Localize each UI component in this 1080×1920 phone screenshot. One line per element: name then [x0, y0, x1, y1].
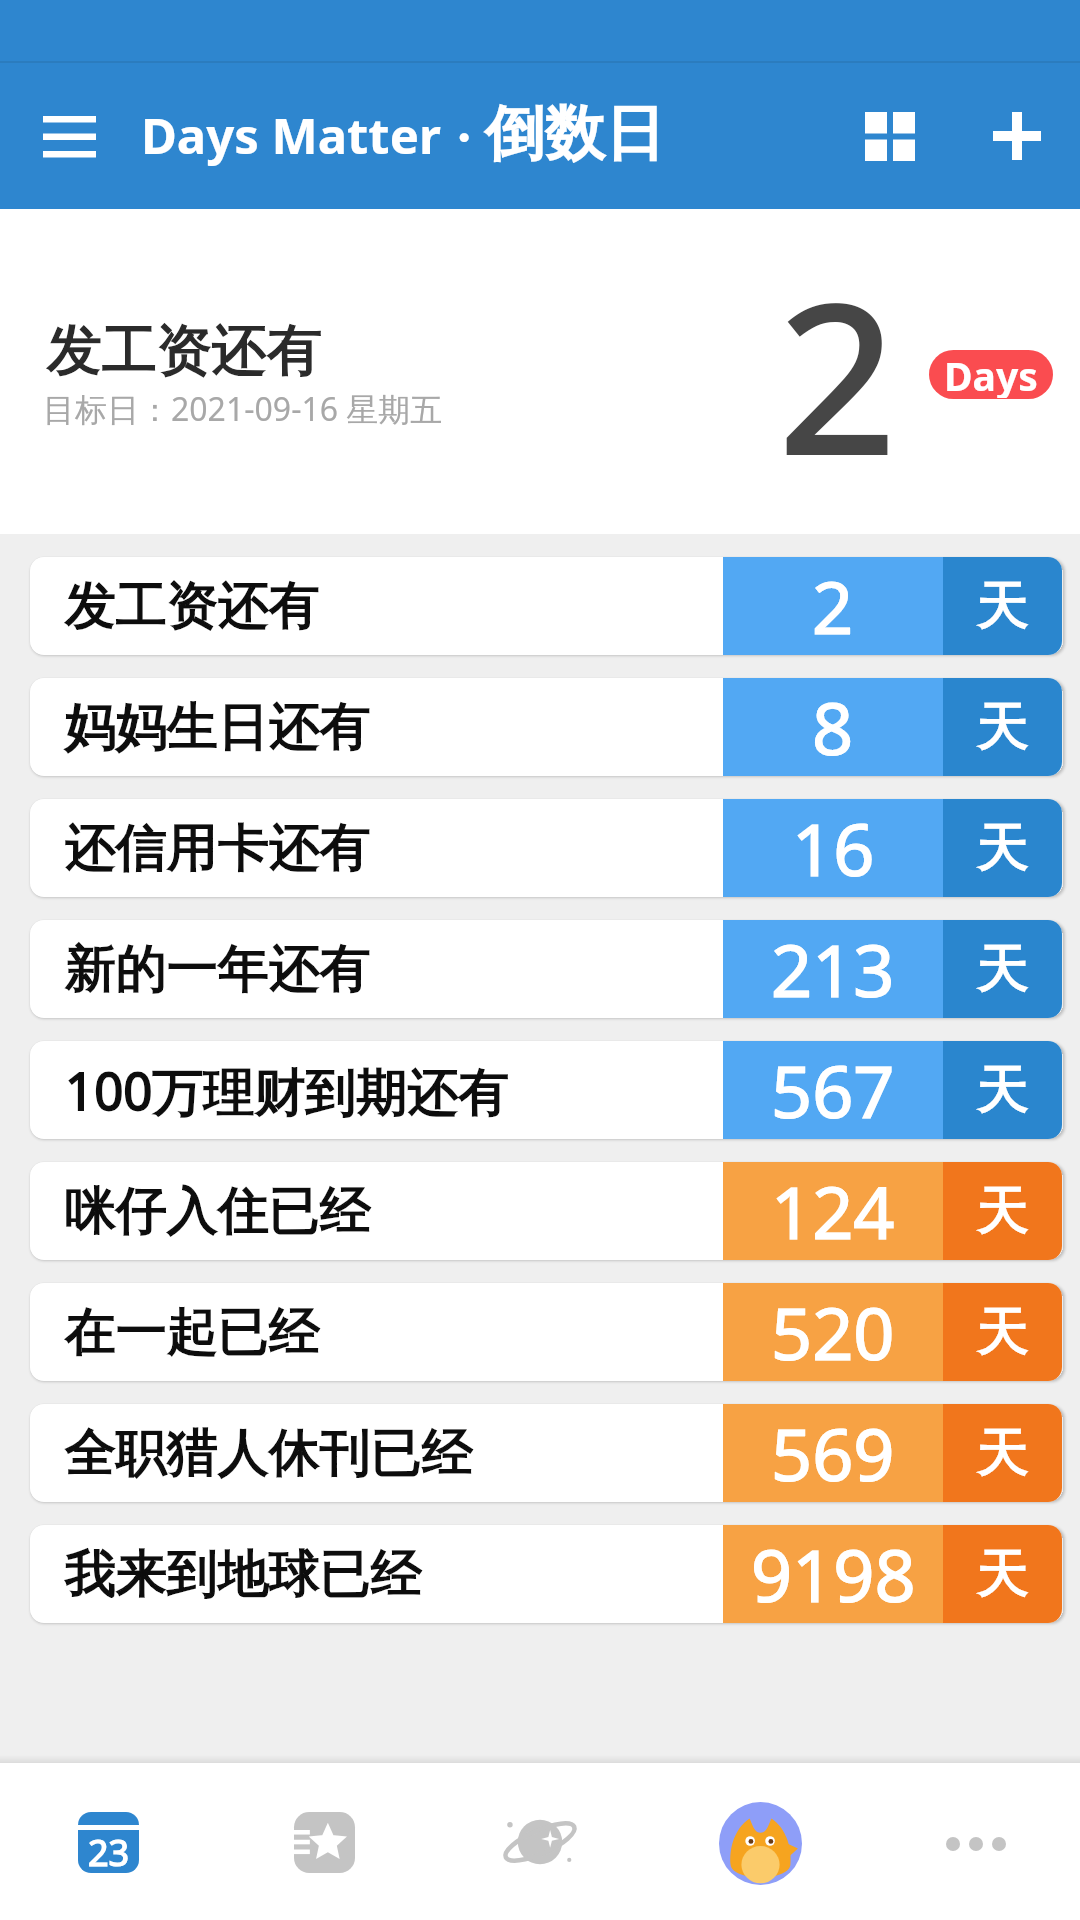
button[interactable]: 咪仔入住已经	[30, 1162, 1062, 1260]
button[interactable]: 全职猎人休刊已经	[30, 1404, 1062, 1502]
staticText: 100万理财到期还有	[65, 1055, 510, 1125]
staticText: 520	[771, 1283, 895, 1381]
staticText: 213	[771, 920, 895, 1018]
staticText: 天	[977, 815, 1029, 881]
staticText: 天	[977, 573, 1029, 639]
staticText: 2	[812, 557, 854, 655]
staticText: 天	[977, 1299, 1029, 1365]
staticText: 在一起已经	[65, 1300, 320, 1364]
button[interactable]: 在一起已经	[30, 1283, 1062, 1381]
button[interactable]: Discover	[432, 1763, 648, 1920]
staticText: 还信用卡还有	[65, 816, 371, 880]
button[interactable]: 新的一年还有	[30, 920, 1062, 1018]
button[interactable]: 妈妈生日还有	[30, 678, 1062, 776]
button[interactable]: 我来到地球已经	[30, 1525, 1062, 1623]
button[interactable]: Switch to grid view	[840, 86, 940, 186]
staticText: 8	[812, 678, 854, 776]
staticText: 全职猎人休刊已经	[65, 1421, 473, 1485]
staticText: 发工资还有	[47, 316, 322, 385]
staticText: 天	[977, 573, 1029, 639]
button[interactable]: Add countdown	[967, 86, 1067, 186]
staticText: Days Matter・倒数日	[141, 96, 665, 172]
staticText: 567	[771, 1041, 895, 1139]
button[interactable]: Countdown list	[0, 1763, 216, 1920]
staticText: 妈妈生日还有	[65, 695, 371, 759]
staticText: 天	[977, 1057, 1029, 1123]
staticText: 213	[771, 920, 895, 1018]
staticText: 新的一年还有	[65, 937, 371, 1001]
staticText: 520	[771, 1283, 895, 1381]
staticText: 9198	[751, 1525, 916, 1623]
staticText: 我来到地球已经	[65, 1542, 422, 1606]
button[interactable]: Open navigation menu	[19, 86, 119, 186]
staticText: 124	[771, 1162, 895, 1260]
button[interactable]: 还信用卡还有	[30, 799, 1062, 897]
staticText: 100万理财到期还有	[65, 1055, 510, 1125]
staticText: 567	[771, 1041, 895, 1139]
staticText: 天	[977, 815, 1029, 881]
button[interactable]: Notes and favourites	[216, 1763, 432, 1920]
staticText: 咪仔入住已经	[65, 1179, 371, 1243]
staticText: 天	[977, 1420, 1029, 1486]
staticText: 23	[88, 1828, 130, 1871]
staticText: 天	[977, 1178, 1029, 1244]
staticText: 咪仔入住已经	[65, 1179, 371, 1243]
staticText: 569	[771, 1404, 895, 1502]
button[interactable]: Profile	[648, 1763, 864, 1920]
button[interactable]: 发工资还有	[30, 557, 1062, 655]
staticText: 发工资还有	[65, 574, 320, 638]
staticText: 天	[977, 1299, 1029, 1365]
staticText: 在一起已经	[65, 1300, 320, 1364]
staticText: 天	[977, 1178, 1029, 1244]
staticText: 发工资还有	[47, 316, 322, 385]
button[interactable]: 发工资还有	[0, 209, 1080, 534]
staticText: 还信用卡还有	[65, 816, 371, 880]
staticText: 天	[977, 936, 1029, 1002]
staticText: 天	[977, 1057, 1029, 1123]
staticText: 124	[771, 1162, 895, 1260]
staticText: 16	[792, 799, 875, 897]
button[interactable]: Days	[929, 350, 1053, 399]
staticText: 16	[792, 799, 875, 897]
staticText: Days	[944, 350, 1038, 398]
staticText: 天	[977, 1541, 1029, 1607]
staticText: 9198	[751, 1525, 916, 1623]
staticText: 569	[771, 1404, 895, 1502]
staticText: 天	[977, 694, 1029, 760]
staticText: 8	[812, 678, 854, 776]
button[interactable]: More options	[864, 1763, 1080, 1920]
staticText: 天	[977, 1420, 1029, 1486]
staticText: 目标日：2021-09-16 星期五	[43, 387, 443, 431]
staticText: 23	[88, 1828, 130, 1871]
button[interactable]: 100万理财到期还有	[30, 1041, 1062, 1139]
staticText: 天	[977, 936, 1029, 1002]
staticText: 发工资还有	[65, 574, 320, 638]
staticText: 2	[777, 231, 898, 517]
staticText: 我来到地球已经	[65, 1542, 422, 1606]
staticText: 2	[812, 557, 854, 655]
staticText: 天	[977, 694, 1029, 760]
staticText: 天	[977, 1541, 1029, 1607]
staticText: 新的一年还有	[65, 937, 371, 1001]
staticText: 全职猎人休刊已经	[65, 1421, 473, 1485]
staticText: 妈妈生日还有	[65, 695, 371, 759]
